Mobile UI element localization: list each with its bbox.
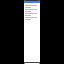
button[interactable] [24, 8, 40, 12]
button[interactable] [24, 4, 40, 8]
button[interactable] [24, 12, 40, 16]
button[interactable] [24, 16, 40, 20]
